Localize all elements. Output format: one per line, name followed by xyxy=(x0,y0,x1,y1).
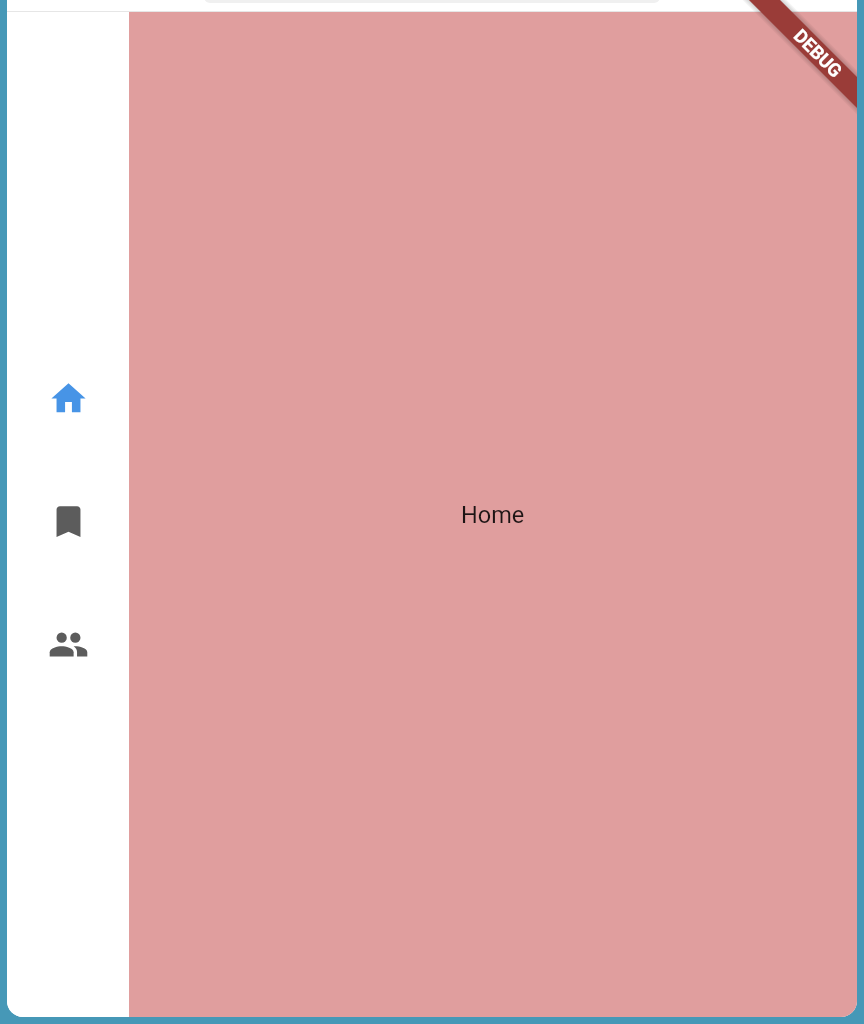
button[interactable]: Home xyxy=(7,337,129,460)
staticText: Home xyxy=(461,501,525,529)
button[interactable]: People xyxy=(7,583,129,706)
button[interactable]: Bookmarks xyxy=(7,460,129,583)
staticText: DEBUG xyxy=(789,25,847,83)
